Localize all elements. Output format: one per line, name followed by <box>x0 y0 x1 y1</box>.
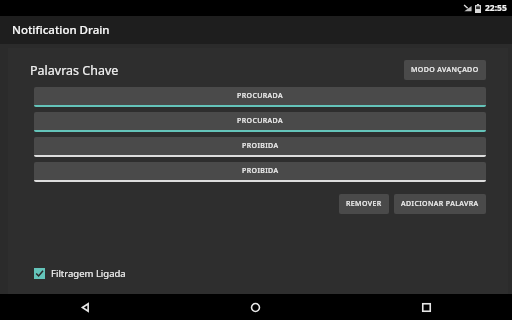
button[interactable]: Recent apps <box>341 294 512 320</box>
button[interactable]: REMOVER <box>339 194 389 214</box>
staticText: Palavras Chave <box>30 62 119 79</box>
button[interactable]: ADICIONAR PALAVRA <box>394 194 486 214</box>
staticText: MODO AVANÇADO <box>411 65 479 75</box>
button[interactable]: PROCURADA <box>34 112 486 132</box>
button[interactable]: Back <box>0 294 170 320</box>
staticText: PROCURADA <box>237 116 283 126</box>
button[interactable]: PROIBIDA <box>34 137 486 157</box>
staticText: Filtragem Ligada <box>51 267 126 280</box>
staticText: PROCURADA <box>237 91 283 101</box>
button[interactable]: Notification Drain <box>0 16 512 44</box>
staticText: ADICIONAR PALAVRA <box>401 199 479 209</box>
button[interactable]: Home <box>170 294 341 320</box>
staticText: REMOVER <box>346 199 382 209</box>
button[interactable]: MODO AVANÇADO <box>404 60 486 80</box>
staticText: 22:55 <box>485 2 507 14</box>
button[interactable]: PROCURADA <box>34 87 486 107</box>
button[interactable]: PROIBIDA <box>34 162 486 182</box>
staticText: PROIBIDA <box>242 166 279 176</box>
staticText: PROIBIDA <box>242 141 279 151</box>
staticText: Notification Drain <box>12 22 110 38</box>
button[interactable]: Filtragem Ligada <box>34 267 126 280</box>
